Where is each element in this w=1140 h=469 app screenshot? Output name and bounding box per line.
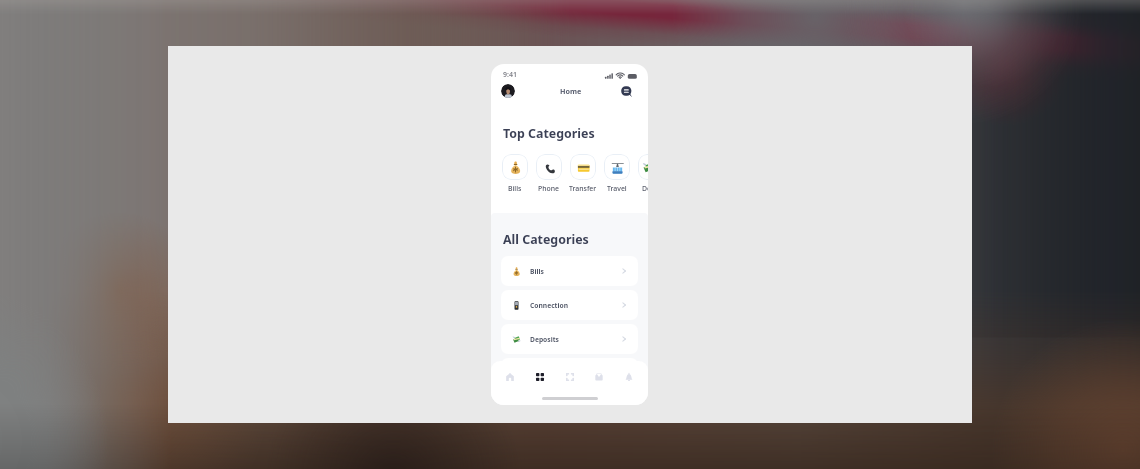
staticText: Connection <box>530 301 569 310</box>
button[interactable]: Dep <box>638 154 648 193</box>
button[interactable]: Notifications <box>618 366 640 388</box>
button[interactable]: Inbox <box>588 366 610 388</box>
button[interactable]: Phone <box>536 154 562 193</box>
button[interactable]: Scan <box>559 366 581 388</box>
button[interactable]: Messages <box>619 84 633 98</box>
staticText: Education <box>530 369 564 378</box>
button[interactable]: Profile <box>501 84 515 98</box>
button[interactable]: Categories <box>529 366 551 388</box>
button[interactable]: Deposits <box>501 324 638 354</box>
staticText: Deposits <box>530 335 559 344</box>
staticText: Bills <box>508 184 522 193</box>
staticText: Bills <box>530 267 544 276</box>
button[interactable]: Home <box>499 366 521 388</box>
button[interactable]: Bills <box>502 154 528 193</box>
staticText: Travel <box>607 184 627 193</box>
button[interactable]: Bills <box>501 256 638 286</box>
staticText: 9:41 <box>503 70 517 80</box>
staticText: Transfer <box>569 184 597 193</box>
staticText: Home <box>560 86 582 96</box>
staticText: All Categories <box>503 231 589 248</box>
staticText: Dep <box>642 184 648 193</box>
staticText: Top Categories <box>503 125 595 142</box>
button[interactable]: Connection <box>501 290 638 320</box>
button[interactable]: Transfer <box>570 154 596 193</box>
button[interactable]: Education <box>501 358 638 388</box>
staticText: Phone <box>538 184 560 193</box>
button[interactable]: Travel <box>604 154 630 193</box>
